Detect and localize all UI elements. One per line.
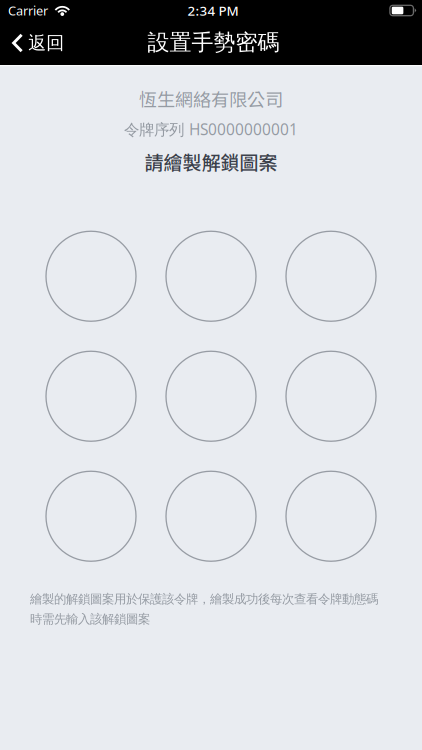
staticText: 令牌序列 HS0000000001 xyxy=(124,119,298,140)
staticText: 請繪製解鎖圖案 xyxy=(144,148,277,175)
button[interactable]: Pattern dot xyxy=(46,471,136,561)
staticText: 返回 xyxy=(28,32,64,54)
button[interactable]: Pattern dot xyxy=(166,231,256,321)
button[interactable]: Pattern dot xyxy=(286,231,376,321)
button[interactable]: Pattern dot xyxy=(286,471,376,561)
button[interactable]: Pattern dot xyxy=(166,351,256,441)
button[interactable]: Pattern dot xyxy=(46,351,136,441)
button[interactable]: Pattern dot xyxy=(286,351,376,441)
button[interactable]: Pattern dot xyxy=(46,231,136,321)
button[interactable]: Pattern dot xyxy=(166,471,256,561)
staticText: 設置手勢密碼 xyxy=(147,29,279,56)
button[interactable]: 返回 xyxy=(0,22,74,64)
staticText: 2:34 PM xyxy=(187,1,238,20)
staticText: 繪製的解鎖圖案用於保護該令牌，繪製成功後每次查看令牌動態碼時需先輸入該解鎖圖案 xyxy=(30,591,378,627)
staticText: 恆生網絡有限公司 xyxy=(139,85,283,112)
staticText: Carrier xyxy=(8,2,48,19)
